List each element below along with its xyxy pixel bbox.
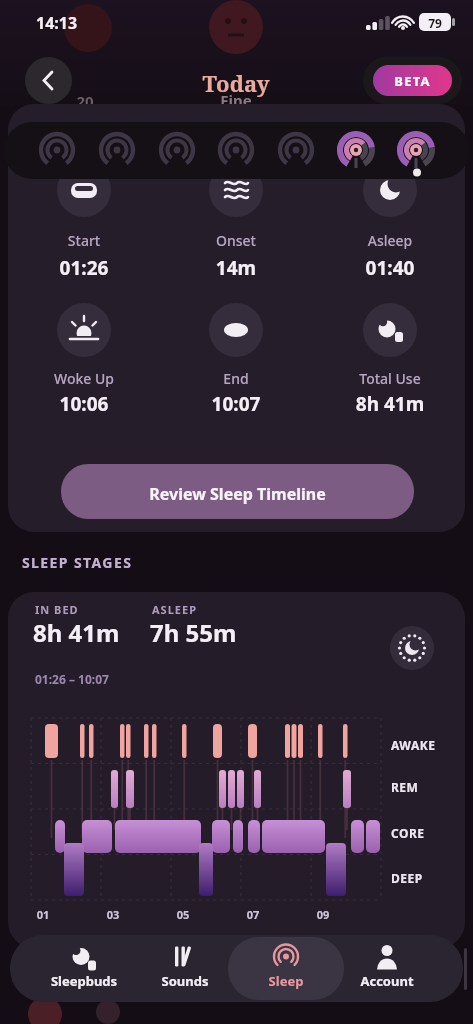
staticText: 07 — [238, 907, 268, 1024]
button[interactable]: BETA — [363, 57, 462, 104]
staticText: 01:26 – 10:07 — [35, 671, 185, 1024]
staticText: 14:13 — [36, 12, 116, 1024]
staticText: 14m — [166, 255, 306, 1024]
staticText: Onset — [166, 231, 306, 1024]
staticText: SLEEP STAGES — [22, 553, 272, 1024]
staticText: 8h 41m — [320, 391, 460, 1024]
button[interactable] — [209, 303, 263, 357]
staticText: 01 — [28, 907, 58, 1024]
staticText: Asleep — [320, 231, 460, 1024]
staticText: End — [166, 369, 306, 1024]
staticText: REM — [391, 779, 461, 1024]
staticText: CORE — [391, 825, 461, 1024]
staticText: Sleepbuds — [34, 972, 134, 1002]
button[interactable] — [209, 163, 263, 217]
staticText: BETA — [373, 72, 452, 96]
button[interactable]: Sounds — [135, 935, 235, 1002]
staticText: 01:26 — [14, 255, 154, 1024]
button[interactable]: Sleepbuds — [34, 935, 134, 1002]
staticText: IN BED — [35, 602, 135, 1024]
staticText: Fine — [186, 90, 286, 1024]
staticText: Account — [337, 972, 437, 1002]
button[interactable] — [57, 163, 111, 217]
staticText: Sounds — [135, 972, 235, 1002]
button[interactable] — [57, 303, 111, 357]
staticText: 10:06 — [14, 391, 154, 1024]
staticText: Woke Up — [14, 369, 154, 1024]
button[interactable]: Account — [337, 935, 437, 1002]
staticText: 05 — [168, 907, 198, 1024]
staticText: ASLEEP — [152, 602, 252, 1024]
staticText: 79 — [419, 15, 451, 1024]
button[interactable] — [363, 163, 417, 217]
staticText: 03 — [98, 907, 128, 1024]
staticText: 10:07 — [166, 391, 306, 1024]
button[interactable]: Review Sleep Timeline — [61, 464, 414, 519]
staticText: Total Use — [320, 369, 460, 1024]
button[interactable] — [363, 303, 417, 357]
button[interactable]: Sleep — [236, 935, 336, 1002]
staticText: 09 — [308, 907, 338, 1024]
button[interactable] — [4, 122, 469, 179]
staticText: Review Sleep Timeline — [61, 483, 414, 519]
staticText: 7h 55m — [150, 616, 300, 1024]
staticText: 01:40 — [320, 255, 460, 1024]
staticText: 20 — [60, 91, 110, 1024]
staticText: Sleep — [236, 972, 336, 1002]
staticText: AWAKE — [391, 737, 461, 1024]
staticText: DEEP — [391, 870, 461, 1024]
staticText: Today — [136, 68, 336, 1024]
button[interactable] — [25, 57, 72, 104]
button[interactable] — [390, 626, 434, 670]
staticText: 8h 41m — [33, 616, 183, 1024]
staticText: Start — [14, 231, 154, 1024]
